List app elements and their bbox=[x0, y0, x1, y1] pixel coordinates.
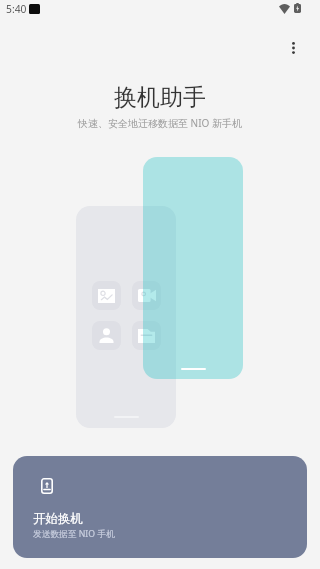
button[interactable]: More options bbox=[275, 30, 311, 66]
staticText: 开始换机 bbox=[33, 511, 83, 527]
staticText: 5:40 bbox=[6, 2, 27, 16]
button[interactable]: 开始换机 bbox=[13, 456, 307, 558]
staticText: 发送数据至 NIO 手机 bbox=[33, 528, 115, 540]
staticText: 快速、安全地迁移数据至 NIO 新手机 bbox=[0, 116, 320, 130]
staticText: 换机助手 bbox=[0, 83, 320, 112]
